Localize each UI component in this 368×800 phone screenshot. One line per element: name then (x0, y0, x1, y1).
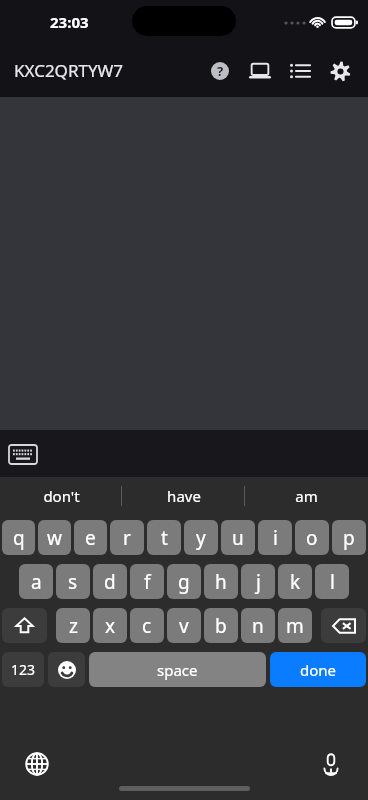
staticText: x (105, 613, 116, 639)
staticText: j (256, 569, 261, 595)
staticText: y (196, 525, 206, 551)
staticText: 123 (11, 660, 36, 679)
button[interactable]: l (315, 564, 349, 599)
button[interactable]: a (19, 564, 53, 599)
button[interactable]: y (184, 520, 218, 555)
staticText: b (215, 613, 227, 639)
staticText: d (104, 569, 116, 595)
button[interactable]: o (295, 520, 329, 555)
button[interactable]: m (278, 608, 312, 643)
button[interactable]: Voice input (312, 745, 350, 783)
button[interactable]: s (56, 564, 90, 599)
button[interactable]: don't (0, 477, 122, 515)
staticText: v (179, 613, 189, 639)
staticText: o (306, 525, 318, 551)
button[interactable]: have (122, 477, 245, 515)
button[interactable]: t (147, 520, 181, 555)
button[interactable]: List (280, 51, 320, 91)
staticText: 23:03 (50, 12, 89, 32)
button[interactable]: am (245, 477, 368, 515)
staticText: l (330, 569, 335, 595)
staticText: n (252, 613, 264, 639)
staticText: g (178, 569, 190, 595)
staticText: r (123, 525, 131, 551)
button[interactable]: 123 (2, 652, 44, 687)
button[interactable]: q (2, 520, 35, 555)
staticText: f (144, 569, 151, 595)
button[interactable]: p (332, 520, 366, 555)
staticText: h (215, 569, 227, 595)
staticText: u (232, 525, 244, 551)
button[interactable]: k (278, 564, 312, 599)
button[interactable]: j (241, 564, 275, 599)
button[interactable]: v (167, 608, 201, 643)
staticText: done (300, 660, 337, 680)
button[interactable]: c (130, 608, 164, 643)
staticText: space (157, 660, 198, 680)
staticText: don't (43, 486, 80, 506)
button[interactable]: b (204, 608, 238, 643)
staticText: a (31, 569, 42, 595)
button[interactable]: z (56, 608, 90, 643)
button[interactable]: n (241, 608, 275, 643)
button[interactable]: e (74, 520, 107, 555)
button[interactable]: w (38, 520, 71, 555)
button[interactable]: x (93, 608, 127, 643)
button[interactable]: Help (200, 51, 240, 91)
button[interactable]: space (89, 652, 266, 687)
button[interactable]: Emoji (48, 652, 85, 687)
button[interactable]: Show keyboard (4, 435, 42, 473)
staticText: z (69, 613, 78, 639)
staticText: m (286, 613, 304, 639)
staticText: ? (217, 62, 224, 80)
button[interactable]: Desktop (240, 51, 280, 91)
button[interactable]: f (130, 564, 164, 599)
button[interactable]: Backspace (321, 608, 366, 643)
button[interactable]: d (93, 564, 127, 599)
staticText: have (167, 486, 201, 506)
button[interactable]: r (110, 520, 144, 555)
staticText: e (85, 525, 96, 551)
staticText: w (47, 525, 62, 551)
button[interactable]: Settings (320, 51, 360, 91)
staticText: q (13, 525, 25, 551)
staticText: t (161, 525, 168, 551)
staticText: p (343, 525, 355, 551)
staticText: k (290, 569, 301, 595)
staticText: i (273, 525, 278, 551)
button[interactable]: Shift (2, 608, 47, 643)
button[interactable]: done (270, 652, 366, 687)
button[interactable]: u (221, 520, 255, 555)
staticText: c (142, 613, 152, 639)
button[interactable]: Change language (18, 745, 56, 783)
button[interactable]: i (258, 520, 292, 555)
staticText: KXC2QRTYW7 (14, 59, 124, 82)
button[interactable]: h (204, 564, 238, 599)
staticText: s (68, 569, 78, 595)
staticText: am (295, 486, 318, 506)
button[interactable]: g (167, 564, 201, 599)
